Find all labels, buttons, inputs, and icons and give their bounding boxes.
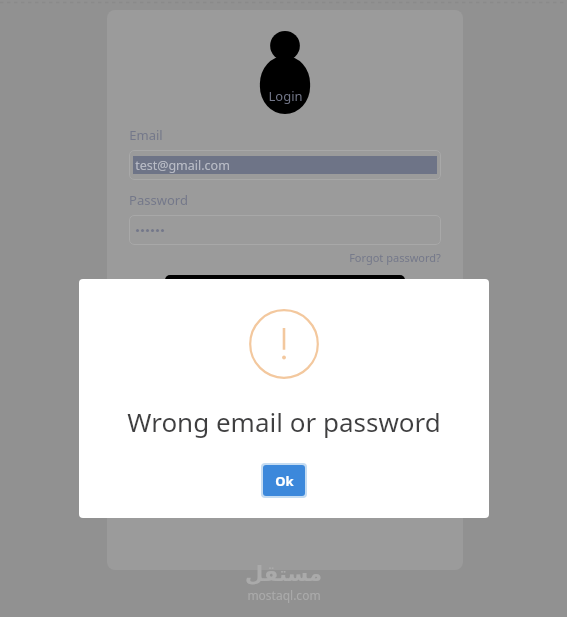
staticText: Password	[129, 191, 188, 209]
staticText: test@gmail.com	[135, 157, 230, 174]
button[interactable]: Ok	[261, 463, 307, 498]
staticText: Wrong email or password	[127, 404, 441, 439]
button[interactable]	[165, 275, 405, 311]
staticText: Forgot password?	[349, 250, 441, 265]
button[interactable]: test@gmail.com	[129, 150, 441, 180]
staticText: مستقل	[245, 562, 322, 586]
other: User avatar	[258, 29, 312, 85]
button[interactable]	[129, 215, 441, 245]
staticText: Email	[129, 126, 163, 144]
other: Warning	[249, 309, 319, 379]
button[interactable]: Forgot password?	[349, 250, 441, 265]
staticText: Ok	[275, 472, 294, 490]
staticText: mostaql.com	[247, 587, 321, 603]
staticText: Login	[268, 87, 303, 105]
